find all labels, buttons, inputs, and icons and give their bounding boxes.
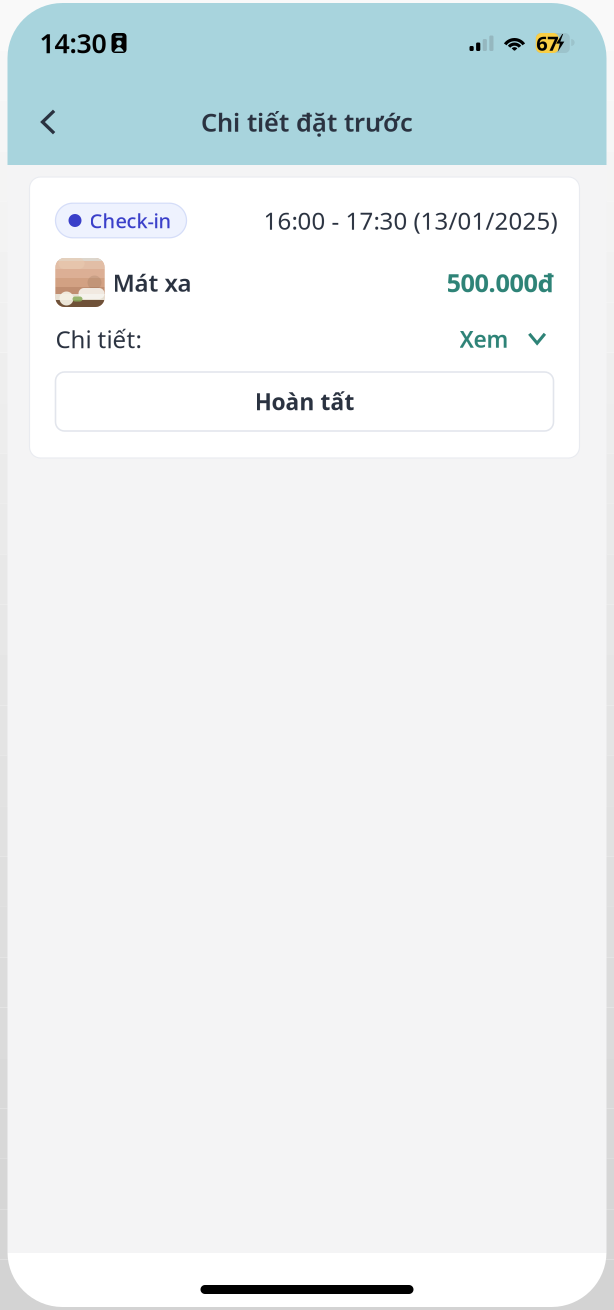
button[interactable]: Hoàn tất xyxy=(55,372,553,431)
staticText: Chi tiết: xyxy=(55,323,141,355)
staticText: Hoàn tất xyxy=(254,386,354,416)
staticText: Mát xa xyxy=(112,267,191,298)
button[interactable]: Xem xyxy=(459,324,553,354)
staticText: Xem xyxy=(459,324,508,354)
staticText: 500.000đ xyxy=(446,266,553,299)
staticText: 67 xyxy=(536,30,558,56)
staticText: Chi tiết đặt trước xyxy=(201,105,413,139)
staticText: 14:30 xyxy=(39,25,106,61)
staticText: Check-in xyxy=(89,207,171,234)
staticText: 16:00 - 17:30 (13/01/2025) xyxy=(263,205,557,236)
button[interactable]: Back xyxy=(7,93,80,151)
